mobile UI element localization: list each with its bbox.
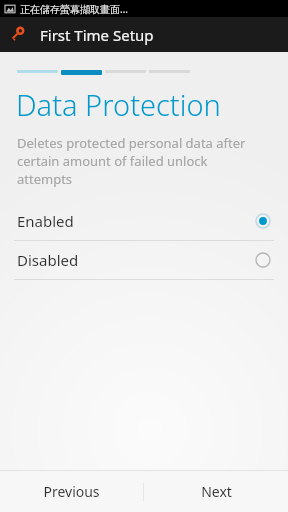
staticText: First Time Setup xyxy=(40,25,154,45)
button[interactable]: Previous xyxy=(0,471,143,512)
staticText: Previous xyxy=(43,482,100,501)
button[interactable]: Disabled xyxy=(0,241,288,279)
staticText: Enabled xyxy=(17,211,74,231)
other: App icon xyxy=(10,25,30,45)
button[interactable]: Enabled xyxy=(0,202,288,240)
staticText: 正在儲存螢幕擷取畫面... xyxy=(20,2,129,16)
staticText: Next xyxy=(201,482,232,501)
staticText: Disabled xyxy=(17,250,79,270)
staticText: Deletes protected personal data after ce… xyxy=(17,134,254,188)
staticText: Data Protection xyxy=(16,85,221,124)
button[interactable]: Next xyxy=(144,471,288,512)
